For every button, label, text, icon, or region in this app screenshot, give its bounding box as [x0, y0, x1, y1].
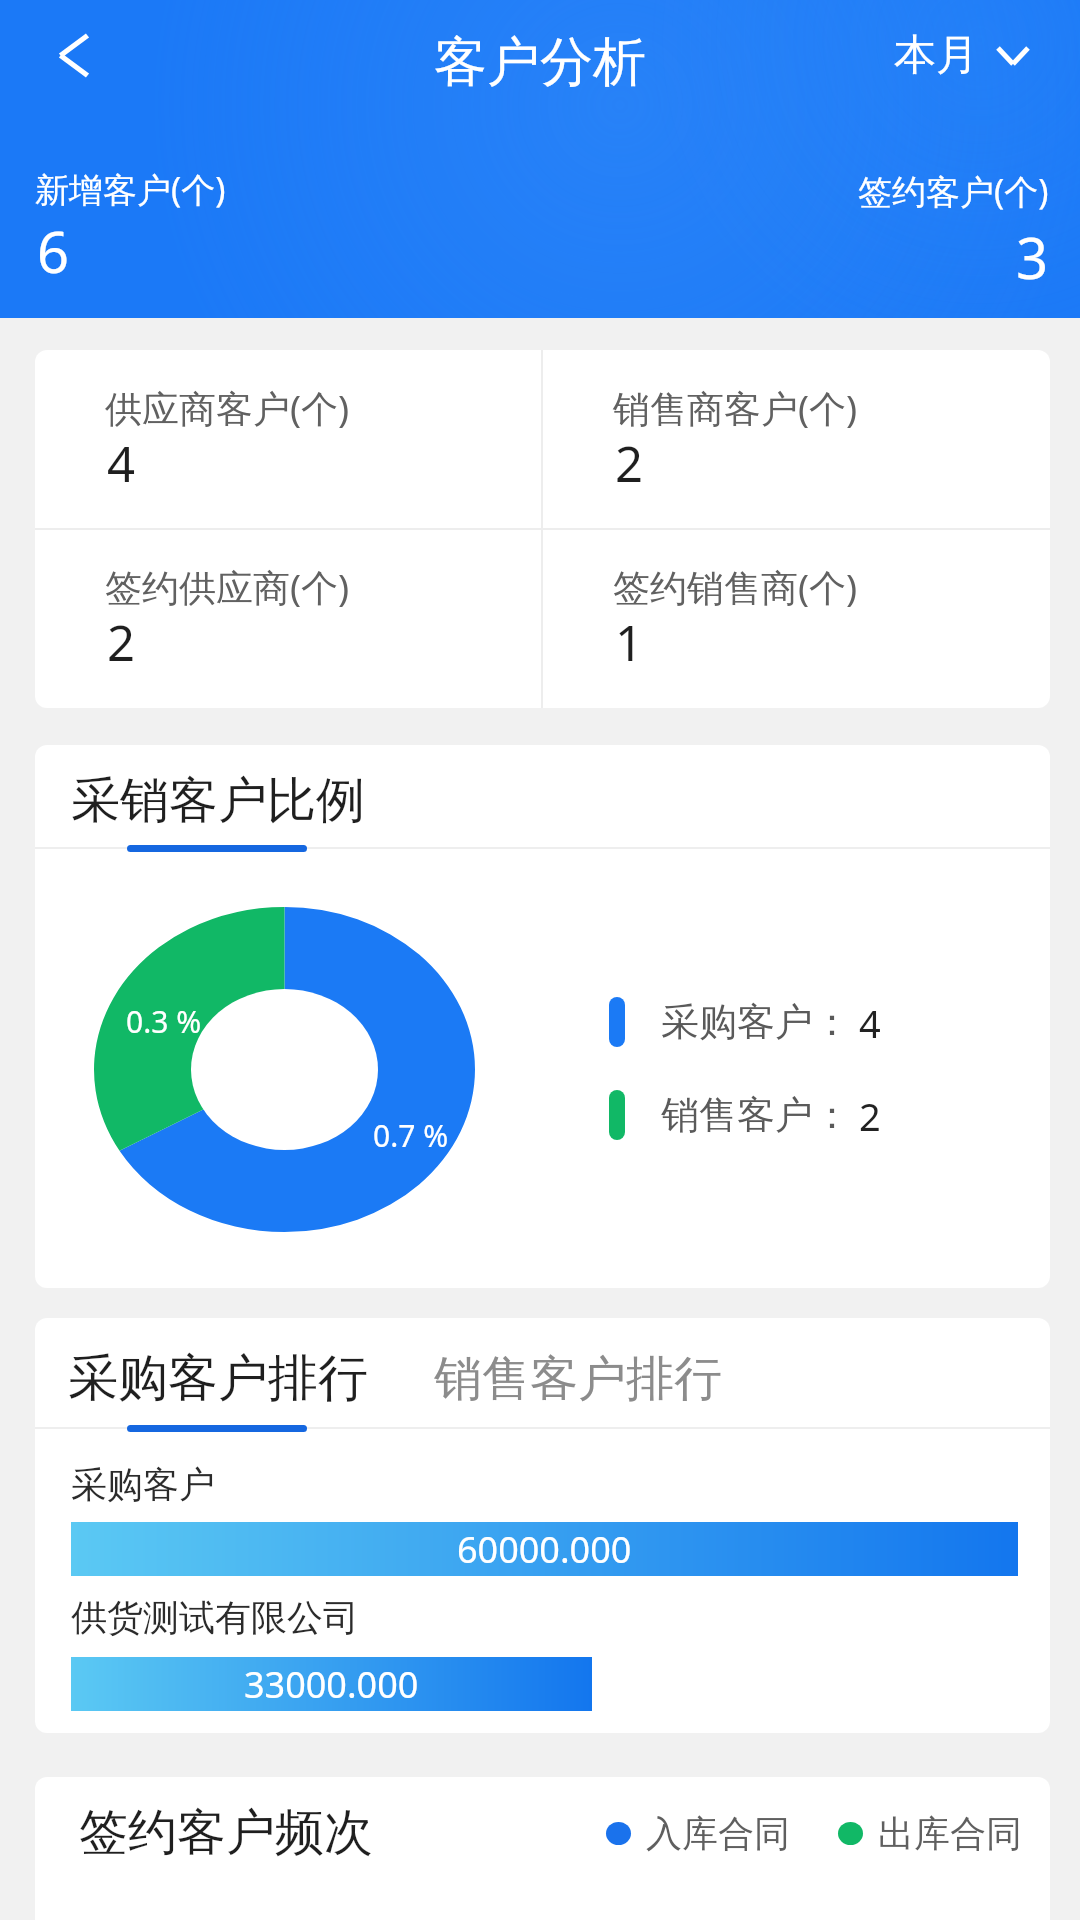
- button[interactable]: 采销客户比例: [61, 745, 371, 847]
- button[interactable]: 入库合同: [606, 1811, 790, 1856]
- staticText: 签约客户频次: [79, 1802, 373, 1864]
- staticText: 0.7 %: [373, 1115, 449, 1156]
- button[interactable]: Back: [18, 15, 132, 99]
- staticText: 4: [859, 997, 881, 1047]
- button[interactable]: 供应商客户(个): [35, 350, 542, 529]
- staticText: 客户分析: [0, 29, 1080, 96]
- staticText: 新增客户(个): [35, 166, 226, 212]
- staticText: 本月: [894, 29, 978, 82]
- staticText: 2: [107, 609, 136, 676]
- staticText: 签约供应商(个): [105, 561, 350, 612]
- staticText: 出库合同: [878, 1811, 1022, 1856]
- staticText: 采销客户比例: [71, 770, 365, 832]
- staticText: 3: [1016, 219, 1049, 295]
- staticText: 供应商客户(个): [105, 382, 350, 433]
- staticText: 6: [37, 213, 70, 289]
- button[interactable]: 签约供应商(个): [35, 529, 542, 708]
- button[interactable]: 销售客户排行: [424, 1318, 734, 1427]
- staticText: 入库合同: [646, 1811, 790, 1856]
- staticText: 2: [615, 430, 644, 497]
- staticText: 采购客户排行: [68, 1347, 368, 1410]
- staticText: 33000.000: [244, 1660, 419, 1709]
- button[interactable]: 签约销售商(个): [543, 529, 1050, 708]
- staticText: 0.3 %: [126, 1001, 202, 1042]
- staticText: 采购客户：: [661, 998, 851, 1046]
- staticText: 1: [615, 609, 644, 676]
- staticText: 签约销售商(个): [613, 561, 858, 612]
- staticText: 采购客户: [71, 1462, 215, 1507]
- button[interactable]: 销售客户：: [609, 1090, 829, 1140]
- button[interactable]: 本月: [886, 17, 1055, 94]
- button[interactable]: 采购客户排行: [58, 1318, 378, 1427]
- button[interactable]: 销售商客户(个): [543, 350, 1050, 529]
- staticText: 60000.000: [457, 1525, 632, 1574]
- staticText: 2: [859, 1090, 881, 1140]
- button[interactable]: 采购客户：: [609, 997, 829, 1047]
- staticText: 供货测试有限公司: [71, 1595, 359, 1640]
- staticText: 销售客户排行: [434, 1349, 722, 1409]
- button[interactable]: 出库合同: [838, 1811, 1022, 1856]
- staticText: 销售客户：: [661, 1091, 851, 1139]
- staticText: 销售商客户(个): [613, 382, 858, 433]
- staticText: 4: [107, 430, 136, 497]
- staticText: 签约客户(个): [858, 168, 1049, 214]
